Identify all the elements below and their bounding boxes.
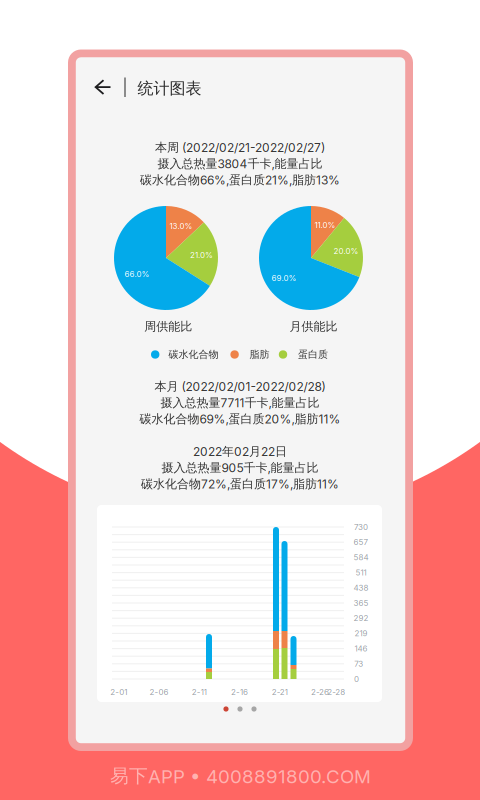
staticText: 2-16	[231, 687, 248, 697]
staticText: 219	[354, 629, 367, 638]
button[interactable]: Back	[85, 72, 121, 102]
staticText: 本周 (2022/02/21-2022/02/27)	[155, 140, 325, 155]
staticText: 蛋白质	[298, 348, 328, 361]
staticText: 146	[354, 644, 367, 653]
staticText: 0	[354, 674, 359, 684]
staticText: 292	[353, 613, 368, 623]
staticText: 730	[354, 522, 368, 532]
staticText: 20.0%	[333, 246, 358, 256]
staticText: 碳水化合物66%,蛋白质21%,脂肪13%	[140, 172, 340, 187]
staticText: 2-11	[192, 687, 207, 697]
staticText: 69.0%	[271, 273, 296, 283]
staticText: 2-26	[311, 687, 329, 697]
staticText: 月供能比	[289, 319, 337, 334]
staticText: 584	[353, 553, 368, 562]
staticText: 2-01	[110, 687, 127, 697]
staticText: 摄入总热量7711千卡,能量占比	[160, 395, 319, 410]
staticText: 本月 (2022/02/01-2022/02/28)	[154, 379, 325, 394]
staticText: 657	[353, 537, 368, 547]
staticText: 易下APP • 4008891800.COM	[110, 764, 371, 788]
staticText: 73	[354, 659, 363, 669]
staticText: 21.0%	[190, 250, 213, 260]
staticText: 2-06	[149, 687, 168, 697]
staticText: 摄入总热量905千卡,能量占比	[161, 460, 318, 475]
staticText: 365	[353, 598, 368, 608]
staticText: 438	[353, 583, 368, 593]
staticText: 511	[355, 568, 366, 577]
staticText: 碳水化合物69%,蛋白质20%,脂肪11%	[139, 411, 340, 426]
staticText: 周供能比	[144, 319, 192, 334]
staticText: 摄入总热量3804千卡,能量占比	[157, 156, 322, 171]
staticText: 2-21	[272, 687, 288, 697]
staticText: 脂肪	[249, 348, 269, 361]
staticText: 统计图表	[137, 78, 201, 99]
staticText: 66.0%	[124, 269, 149, 279]
staticText: 13.0%	[169, 221, 192, 231]
staticText: 碳水化合物	[168, 348, 218, 361]
staticText: 碳水化合物72%,蛋白质17%,脂肪11%	[141, 476, 339, 491]
staticText: 11.0%	[314, 220, 335, 230]
staticText: 2022年02月22日	[193, 444, 287, 459]
staticText: 2-28	[327, 687, 345, 697]
